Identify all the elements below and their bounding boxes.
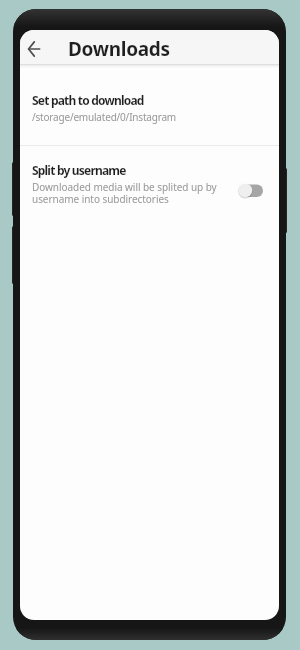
button[interactable] <box>20 146 279 224</box>
staticText: Downloads <box>68 36 170 62</box>
staticText: Split by username <box>32 162 126 178</box>
staticText: Set path to download <box>32 92 144 108</box>
button[interactable] <box>238 182 264 199</box>
button[interactable] <box>20 35 48 63</box>
button[interactable] <box>20 68 279 145</box>
staticText: Downloaded media will be splited up by u… <box>32 180 217 206</box>
staticText: /storage/emulated/0/Instagram <box>32 110 176 124</box>
